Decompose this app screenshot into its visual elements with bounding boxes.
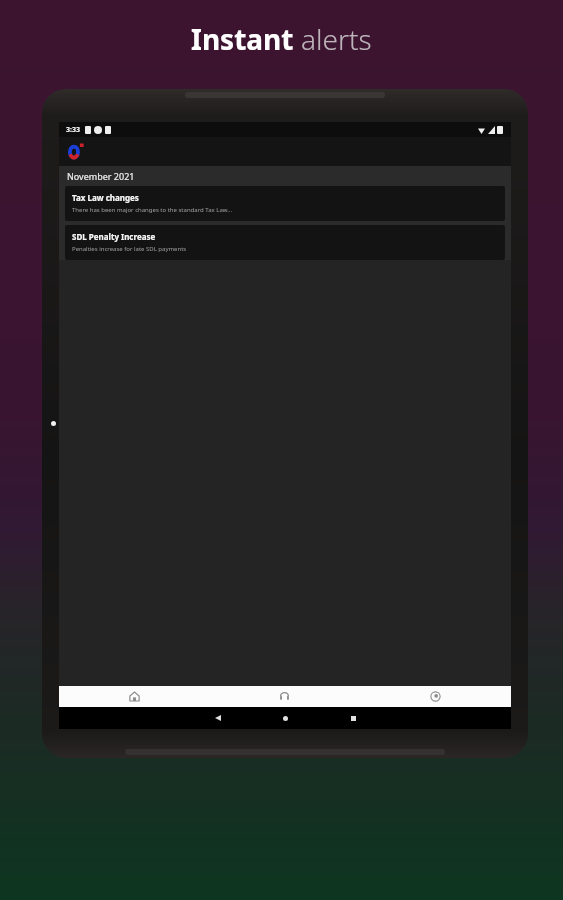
staticText: There has been major changes to the stan…	[72, 206, 233, 214]
staticText: Tax Law changes	[72, 192, 139, 203]
staticText: alerts	[301, 20, 372, 58]
button[interactable]: Tax Law changes	[65, 186, 505, 221]
other: App logo	[68, 142, 85, 161]
button[interactable]: Home	[251, 707, 319, 729]
button[interactable]: Back	[184, 707, 251, 729]
staticText: 3:33	[66, 125, 80, 135]
staticText: Instant	[191, 20, 301, 58]
button[interactable]: Home	[59, 686, 209, 707]
staticText: Penalties increase for late SDL payments	[72, 245, 187, 253]
staticText: SDL Penalty Increase	[72, 231, 156, 242]
button[interactable]: Support	[209, 686, 360, 707]
button[interactable]: Profile	[360, 686, 511, 707]
staticText: November 2021	[67, 170, 135, 182]
button[interactable]: SDL Penalty Increase	[65, 225, 505, 260]
button[interactable]: Recent apps	[319, 707, 387, 729]
